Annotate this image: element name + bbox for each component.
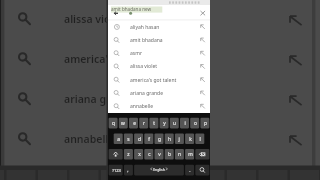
staticText: america's got: [64, 52, 133, 66]
button[interactable]: [108, 20, 210, 33]
button[interactable]: [108, 100, 210, 113]
staticText: u: [173, 120, 176, 127]
button[interactable]: z: [118, 150, 138, 158]
staticText: q: [112, 120, 115, 127]
staticText: k: [189, 136, 192, 143]
button[interactable]: b: [159, 150, 179, 158]
button[interactable]: Search: [195, 165, 210, 176]
staticText: o: [194, 120, 197, 127]
button[interactable]: d: [129, 135, 149, 143]
staticText: n: [178, 151, 181, 158]
button[interactable]: o: [185, 119, 205, 127]
staticText: m: [188, 151, 193, 158]
staticText: f: [148, 136, 150, 143]
staticText: america's got talent: [130, 77, 198, 84]
button[interactable]: [108, 73, 210, 86]
button[interactable]: f: [139, 135, 159, 143]
staticText: z: [127, 151, 130, 158]
staticText: ,: [127, 167, 129, 174]
button[interactable]: [108, 60, 210, 73]
staticText: r: [143, 120, 145, 127]
button[interactable]: [108, 47, 210, 60]
staticText: e: [133, 120, 136, 127]
staticText: alissa violet: [130, 63, 198, 70]
button[interactable]: [108, 34, 210, 47]
button[interactable]: v: [149, 150, 169, 158]
button[interactable]: English: [149, 165, 169, 173]
staticText: x: [138, 151, 141, 158]
button[interactable]: t: [144, 119, 164, 127]
staticText: annabelle: [64, 132, 115, 146]
staticText: annabelle: [130, 103, 198, 110]
staticText: English: [153, 167, 165, 172]
button[interactable]: y: [154, 119, 174, 127]
staticText: asmr: [130, 50, 198, 57]
button[interactable]: Back: [109, 8, 121, 20]
staticText: j: [178, 136, 180, 143]
staticText: ?123: [112, 168, 121, 173]
button[interactable]: h: [159, 135, 179, 143]
button[interactable]: i: [175, 119, 195, 127]
staticText: t: [153, 120, 155, 127]
button[interactable]: r: [134, 119, 154, 127]
staticText: .: [189, 167, 191, 174]
button[interactable]: x: [129, 150, 149, 158]
button[interactable]: c: [139, 150, 159, 158]
staticText: ariana grande: [64, 92, 136, 106]
staticText: g: [158, 136, 161, 143]
staticText: y: [163, 120, 166, 127]
button[interactable]: s: [118, 135, 138, 143]
staticText: l: [199, 136, 201, 143]
staticText: amit bhadana: [130, 37, 198, 44]
button[interactable]: a: [108, 135, 128, 143]
staticText: h: [168, 136, 171, 143]
button[interactable]: .: [180, 166, 200, 174]
staticText: alissa violet: [64, 12, 124, 26]
staticText: p: [204, 120, 207, 127]
button[interactable]: ?123: [106, 166, 126, 174]
button[interactable]: m: [180, 150, 200, 158]
staticText: w: [121, 120, 125, 127]
button[interactable]: Clear search: [196, 8, 208, 20]
button[interactable]: j: [169, 135, 189, 143]
staticText: d: [138, 136, 141, 143]
button[interactable]: [108, 87, 210, 100]
button[interactable]: l: [190, 135, 210, 143]
staticText: amit bhadana new video: [111, 6, 152, 12]
button[interactable]: e: [124, 119, 144, 127]
staticText: s: [127, 136, 130, 143]
button[interactable]: u: [164, 119, 184, 127]
staticText: ariana grande: [130, 90, 198, 97]
staticText: v: [158, 151, 161, 158]
button[interactable]: ,: [118, 166, 138, 174]
staticText: b: [168, 151, 171, 158]
button[interactable]: q: [103, 119, 123, 127]
staticText: i: [184, 120, 186, 127]
button[interactable]: n: [169, 150, 189, 158]
staticText: c: [148, 151, 151, 158]
staticText: a: [117, 136, 120, 143]
button[interactable]: k: [180, 135, 200, 143]
staticText: aliyah hasan: [130, 24, 198, 31]
button[interactable]: w: [113, 119, 133, 127]
button[interactable]: p: [195, 119, 215, 127]
button[interactable]: g: [149, 135, 169, 143]
